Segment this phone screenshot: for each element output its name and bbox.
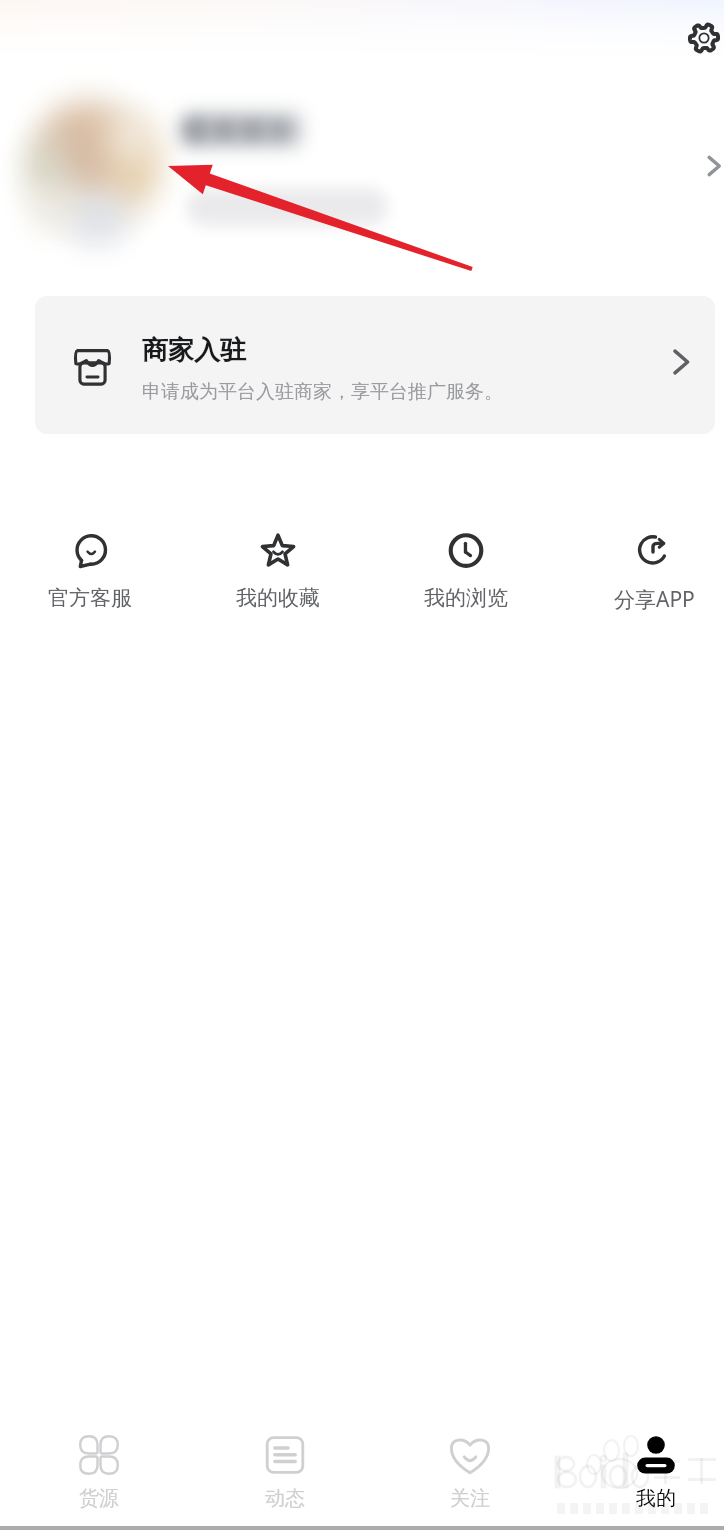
- staticText: 分享APP: [614, 585, 695, 614]
- staticText: 我的: [636, 1486, 676, 1511]
- button[interactable]: 关注: [410, 1435, 530, 1511]
- button[interactable]: [0, 78, 724, 253]
- staticText: 我的收藏: [236, 585, 320, 611]
- button[interactable]: 我的: [596, 1435, 716, 1511]
- staticText: 商家入驻: [142, 334, 246, 367]
- button[interactable]: 官方客服: [20, 532, 160, 611]
- staticText: 货源: [79, 1486, 119, 1511]
- button[interactable]: 动态: [225, 1435, 345, 1511]
- button[interactable]: 我的收藏: [208, 532, 348, 611]
- button[interactable]: 商家入驻: [35, 296, 715, 434]
- button[interactable]: 货源: [39, 1435, 159, 1511]
- staticText: 关注: [450, 1486, 490, 1511]
- staticText: 我的浏览: [424, 585, 508, 611]
- staticText: 动态: [265, 1486, 305, 1511]
- staticText: 官方客服: [48, 585, 132, 611]
- button[interactable]: 分享APP: [584, 532, 724, 614]
- staticText: 申请成为平台入驻商家，享平台推广服务。: [142, 380, 503, 404]
- button[interactable]: 我的浏览: [396, 532, 536, 611]
- button[interactable]: Settings: [676, 10, 724, 66]
